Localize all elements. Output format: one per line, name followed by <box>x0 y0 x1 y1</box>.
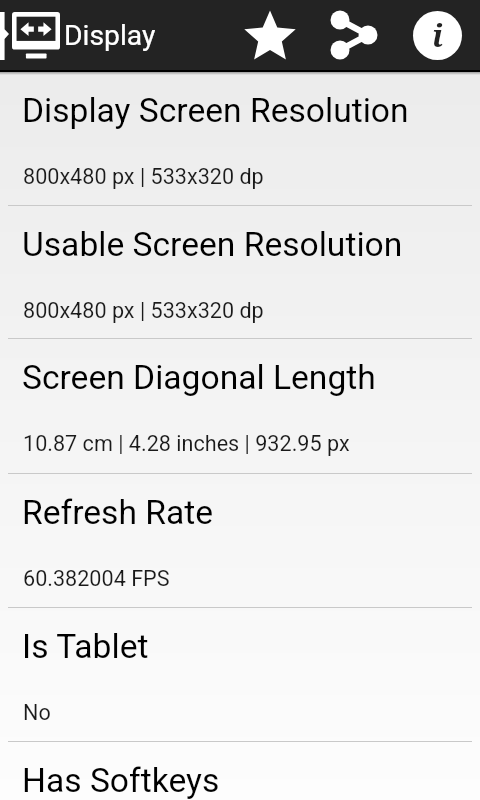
staticText: Is Tablet <box>22 627 149 666</box>
staticText: 800x480 px | 533x320 dp <box>23 298 264 323</box>
button[interactable]: Favorite <box>234 0 306 70</box>
button[interactable]: Usable Screen Resolution <box>0 206 480 339</box>
staticText: Display <box>64 19 156 52</box>
button[interactable]: Info <box>403 0 472 70</box>
button[interactable]: Share <box>318 0 390 70</box>
button[interactable]: Is Tablet <box>0 608 480 742</box>
button[interactable]: Navigate up <box>0 0 62 70</box>
button[interactable]: Screen Diagonal Length <box>0 339 480 474</box>
staticText: 10.87 cm | 4.28 inches | 932.95 px <box>23 431 350 456</box>
button[interactable]: Has Softkeys <box>0 742 480 800</box>
staticText: Display Screen Resolution <box>22 91 409 130</box>
staticText: 60.382004 FPS <box>23 566 170 591</box>
staticText: No <box>23 700 51 725</box>
staticText: i <box>432 14 443 56</box>
staticText: Refresh Rate <box>22 493 214 532</box>
staticText: Screen Diagonal Length <box>22 358 376 397</box>
button[interactable]: Display Screen Resolution <box>0 72 480 206</box>
staticText: 800x480 px | 533x320 dp <box>23 164 264 189</box>
staticText: Has Softkeys <box>22 761 220 800</box>
button[interactable]: Refresh Rate <box>0 474 480 608</box>
staticText: Usable Screen Resolution <box>22 225 403 264</box>
